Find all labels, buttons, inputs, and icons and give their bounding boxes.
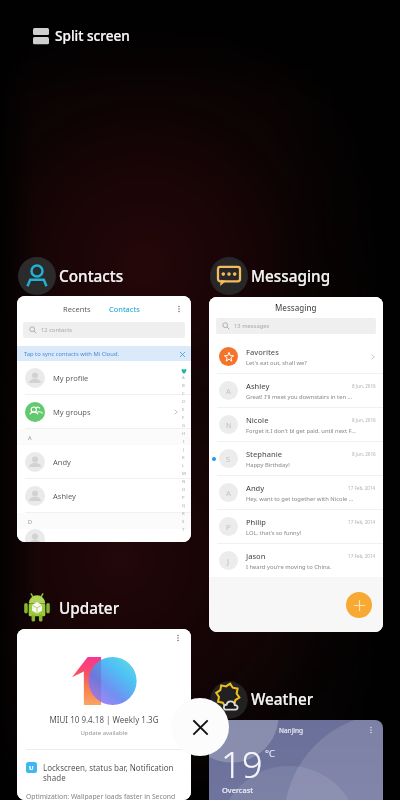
staticText: A (226, 386, 231, 396)
button[interactable]: A (209, 374, 383, 407)
staticText: S (182, 519, 185, 525)
staticText: Favorites (246, 347, 279, 357)
button[interactable]: Updater (17, 589, 120, 627)
staticText: Overcast (222, 785, 253, 795)
staticText: 13 messages (234, 322, 270, 330)
button[interactable]: Recents (61, 302, 93, 316)
staticText: P (226, 522, 231, 532)
staticText: A (182, 375, 185, 381)
staticText: Philip (246, 517, 267, 527)
button[interactable]: Close all apps (171, 698, 229, 756)
staticText: Nanjing (279, 726, 303, 735)
button[interactable]: Andy (25, 445, 179, 478)
staticText: 17 Feb, 2014 (348, 553, 376, 559)
staticText: 17 Feb, 2014 (348, 519, 376, 525)
staticText: Weather (251, 689, 314, 710)
staticText: D (182, 399, 186, 405)
staticText: Forget it.I don't bl get paid. until nex… (246, 427, 356, 435)
staticText: A (226, 488, 231, 498)
staticText: 8 Jun, 2016 (352, 417, 376, 423)
staticText: K (182, 455, 185, 461)
staticText: Lockscreen, status bar, Notification sha… (43, 762, 182, 784)
staticText: A (28, 434, 32, 441)
staticText: U (29, 764, 34, 772)
staticText: 19 (221, 740, 264, 789)
button[interactable]: More options (366, 725, 376, 735)
staticText: R (182, 511, 185, 517)
staticText: E (182, 407, 185, 413)
staticText: F (182, 415, 185, 421)
staticText: I (183, 439, 185, 445)
button[interactable]: Recents (17, 296, 191, 542)
staticText: 17 Feb, 2014 (348, 485, 376, 491)
staticText: Ashley (246, 381, 270, 391)
staticText: G (182, 423, 186, 429)
staticText: Nicole (246, 415, 269, 425)
staticText: H (182, 431, 186, 437)
button[interactable]: My profile (25, 361, 179, 394)
staticText: Update available (17, 729, 191, 737)
button[interactable]: Tap to sync contacts with Mi Cloud. (17, 346, 191, 361)
staticText: 12 contacts (41, 326, 73, 334)
staticText: Hey, want to get together with Nicole ..… (246, 495, 354, 503)
staticText: S (226, 454, 231, 464)
staticText: Stephanie (246, 449, 282, 459)
staticText: Andy (246, 483, 265, 493)
staticText: Let's eat out, shall we? (246, 359, 307, 367)
staticText: Optimization: Wallpaper loads faster in … (26, 792, 182, 800)
staticText: N (226, 420, 232, 430)
staticText: Q (182, 503, 186, 509)
button[interactable]: More options (17, 629, 191, 800)
staticText: N (182, 479, 186, 485)
button[interactable]: New message (346, 592, 372, 618)
staticText: Updater (59, 598, 120, 619)
staticText: J (183, 447, 185, 453)
button[interactable]: 12 contacts (23, 322, 185, 338)
staticText: Andy (53, 457, 71, 467)
staticText: MIUI 10 9.4.18 | Weekly 1.3G (17, 714, 191, 725)
staticText: D (28, 518, 33, 525)
button[interactable]: S (209, 442, 383, 475)
staticText: Recents (63, 304, 91, 314)
staticText: Happy Birthday! (246, 461, 290, 469)
button[interactable]: Split screen (33, 26, 130, 45)
button[interactable]: N (209, 408, 383, 441)
staticText: Great! I'll meet you downstairs in ten .… (246, 393, 353, 401)
staticText: Split screen (55, 26, 130, 45)
staticText: My profile (53, 373, 89, 383)
staticText: My groups (53, 407, 91, 417)
staticText: L (182, 463, 185, 469)
button[interactable]: Messaging (209, 297, 383, 632)
button[interactable]: Favorites (209, 340, 383, 373)
staticText: C (182, 391, 185, 397)
button[interactable]: J (209, 544, 383, 577)
button[interactable]: Messaging (209, 257, 331, 295)
button[interactable]: My groups (25, 395, 179, 428)
staticText: T (182, 527, 185, 533)
staticText: O (182, 487, 186, 493)
staticText: Messaging (251, 266, 331, 287)
staticText: Contacts (59, 266, 124, 287)
staticText: Ashley (53, 491, 76, 501)
button[interactable]: Weather (209, 680, 314, 718)
staticText: °C (265, 747, 275, 760)
staticText: B (182, 383, 185, 389)
button[interactable]: 13 messages (216, 318, 376, 334)
button[interactable] (25, 529, 179, 542)
staticText: Messaging (275, 302, 317, 313)
button[interactable]: More options (173, 633, 183, 643)
button[interactable]: A (209, 476, 383, 509)
button[interactable]: Contacts (107, 302, 142, 316)
staticText: 8 Jun, 2016 (352, 451, 376, 457)
button[interactable]: Contacts (17, 257, 124, 295)
button[interactable]: More options (174, 304, 184, 314)
button[interactable]: Ashley (25, 479, 179, 512)
staticText: LOL, that's so funny! (246, 529, 302, 537)
button[interactable]: Nanjing (209, 720, 383, 800)
staticText: M (182, 471, 186, 477)
staticText: P (182, 495, 185, 501)
staticText: J (227, 556, 230, 566)
staticText: I heard you're moving to China. (246, 563, 332, 571)
staticText: Tap to sync contacts with Mi Cloud. (24, 350, 120, 358)
button[interactable]: P (209, 510, 383, 543)
